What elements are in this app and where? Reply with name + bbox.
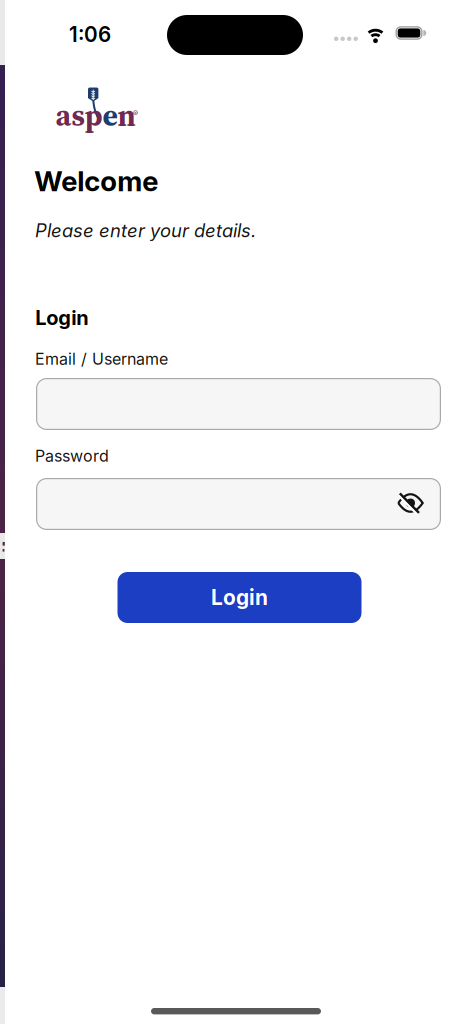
button[interactable] [398,492,423,513]
staticText: ® [133,108,138,118]
staticText: e [102,95,117,136]
staticText: 1:06 [69,22,111,47]
staticText: Login [35,305,88,330]
staticText: Login [211,585,268,610]
staticText: Please enter your details. [35,219,256,242]
button[interactable]: Login [117,572,361,623]
staticText: Password [35,446,109,466]
button[interactable] [36,378,441,430]
button[interactable] [36,478,441,530]
staticText: asp [55,95,102,136]
staticText: Email / Username [35,349,168,369]
staticText: n [117,95,135,136]
staticText: Welcome [34,164,158,198]
